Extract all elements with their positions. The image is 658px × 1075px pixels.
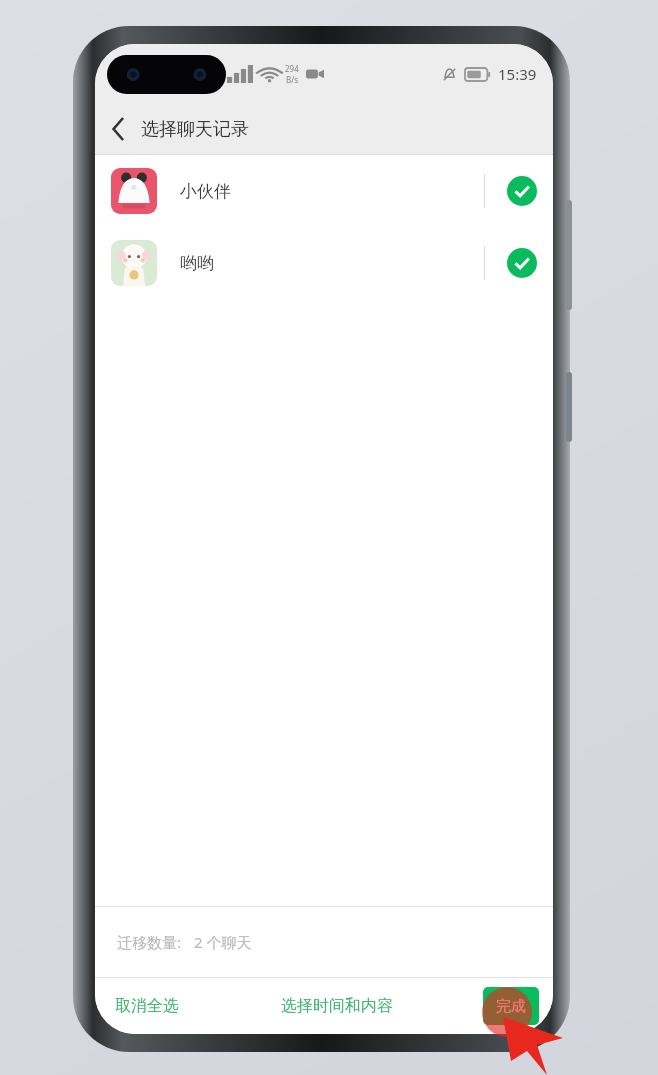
button[interactable]: Selected — [507, 248, 537, 278]
button[interactable]: Back — [95, 104, 141, 154]
staticText: 小伙伴 — [180, 181, 231, 202]
button[interactable]: Selected — [507, 176, 537, 206]
button[interactable]: 完成 — [483, 987, 539, 1025]
staticText: 选择时间和内容 — [281, 996, 393, 1016]
staticText: 哟哟 — [180, 253, 214, 274]
staticText: 取消全选 — [115, 996, 179, 1016]
button[interactable]: 小伙伴 — [95, 155, 553, 227]
staticText: 2 个聊天 — [194, 932, 252, 952]
staticText: 15:39 — [498, 64, 537, 84]
staticText: 迁移数量: — [117, 932, 182, 952]
staticText: 294 — [285, 63, 299, 74]
staticText: 选择聊天记录 — [141, 118, 249, 141]
staticText: B/s — [286, 74, 299, 85]
button[interactable]: 哟哟 — [95, 227, 553, 299]
button[interactable]: 选择时间和内容 — [269, 988, 405, 1024]
button[interactable]: 取消全选 — [103, 988, 191, 1024]
staticText: 完成 — [496, 997, 526, 1016]
